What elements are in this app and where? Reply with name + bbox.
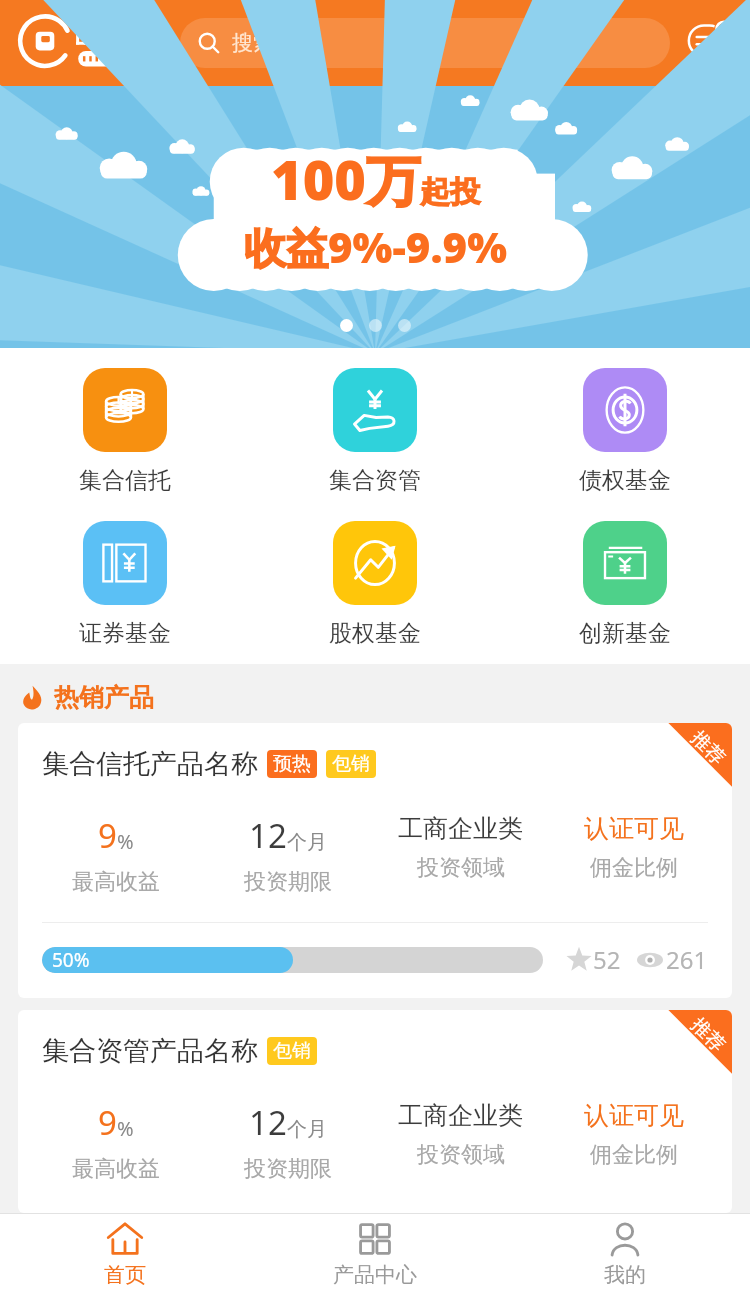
button[interactable]: 股权基金 — [250, 515, 500, 654]
staticText: 创新基金 — [579, 619, 671, 648]
button[interactable]: 100万 — [0, 86, 750, 348]
button[interactable]: 债权基金 — [500, 362, 750, 501]
staticText: 推荐 — [686, 726, 730, 770]
staticText: 推荐 — [686, 1013, 730, 1057]
staticText: 工商企业类 — [398, 1100, 523, 1131]
button[interactable]: 集合信托 — [0, 362, 250, 501]
staticText: 最高收益 — [72, 868, 160, 896]
button[interactable]: Page 1 — [340, 319, 353, 332]
button[interactable]: 产品中心 — [250, 1214, 500, 1294]
staticText: 集合信托产品名称 — [42, 747, 258, 781]
button[interactable]: Page 3 — [398, 319, 411, 332]
staticText: 佣金比例 — [590, 1141, 678, 1169]
staticText: 认证可见 — [584, 813, 684, 844]
button[interactable]: 搜索 — [180, 18, 670, 68]
staticText: 集合资管 — [329, 466, 421, 495]
staticText: 投资领域 — [417, 1141, 505, 1169]
staticText: 股权基金 — [329, 619, 421, 648]
staticText: 佣金比例 — [590, 854, 678, 882]
staticText: 个月 — [287, 830, 327, 855]
staticText: 9 — [98, 1100, 117, 1145]
staticText: 最高收益 — [72, 1155, 160, 1183]
staticText: 产品中心 — [333, 1262, 417, 1288]
staticText: 个月 — [287, 1117, 327, 1142]
staticText: 搜索 — [232, 30, 274, 56]
staticText: % — [117, 1115, 134, 1142]
staticText: 证券基金 — [79, 619, 171, 648]
button[interactable]: 集合资管 — [250, 362, 500, 501]
staticText: 债权基金 — [579, 466, 671, 495]
staticText: 100万 — [271, 142, 420, 216]
staticText: 12 — [249, 813, 287, 858]
staticText: 预热 — [273, 752, 311, 776]
staticText: 261 — [666, 943, 708, 976]
staticText: 投资期限 — [244, 1155, 332, 1183]
button[interactable]: 集合资管产品名称 — [18, 1010, 732, 1213]
staticText: 我的 — [604, 1262, 646, 1288]
staticText: 收益9%-9.9% — [244, 218, 507, 275]
staticText: 50% — [52, 947, 90, 973]
staticText: 52 — [593, 943, 621, 976]
button[interactable]: 创新基金 — [500, 515, 750, 654]
button[interactable]: Messages — [684, 17, 736, 69]
button[interactable]: 我的 — [500, 1214, 750, 1294]
staticText: 集合信托 — [79, 466, 171, 495]
staticText: 9 — [98, 813, 117, 858]
button[interactable]: Page 2 — [369, 319, 382, 332]
staticText: % — [117, 828, 134, 855]
staticText: 认证可见 — [584, 1100, 684, 1131]
staticText: 工商企业类 — [398, 813, 523, 844]
staticText: 热销产品 — [54, 682, 154, 713]
staticText: 包销 — [273, 1039, 311, 1063]
button[interactable]: 证券基金 — [0, 515, 250, 654]
staticText: 投资期限 — [244, 868, 332, 896]
button[interactable]: 首页 — [0, 1214, 250, 1294]
staticText: 12 — [249, 1100, 287, 1145]
staticText: 包销 — [332, 752, 370, 776]
staticText: 集合资管产品名称 — [42, 1034, 258, 1068]
staticText: 首页 — [104, 1262, 146, 1288]
button[interactable]: 集合信托产品名称 — [18, 723, 732, 998]
staticText: 起投 — [420, 173, 480, 211]
staticText: 投资领域 — [417, 854, 505, 882]
